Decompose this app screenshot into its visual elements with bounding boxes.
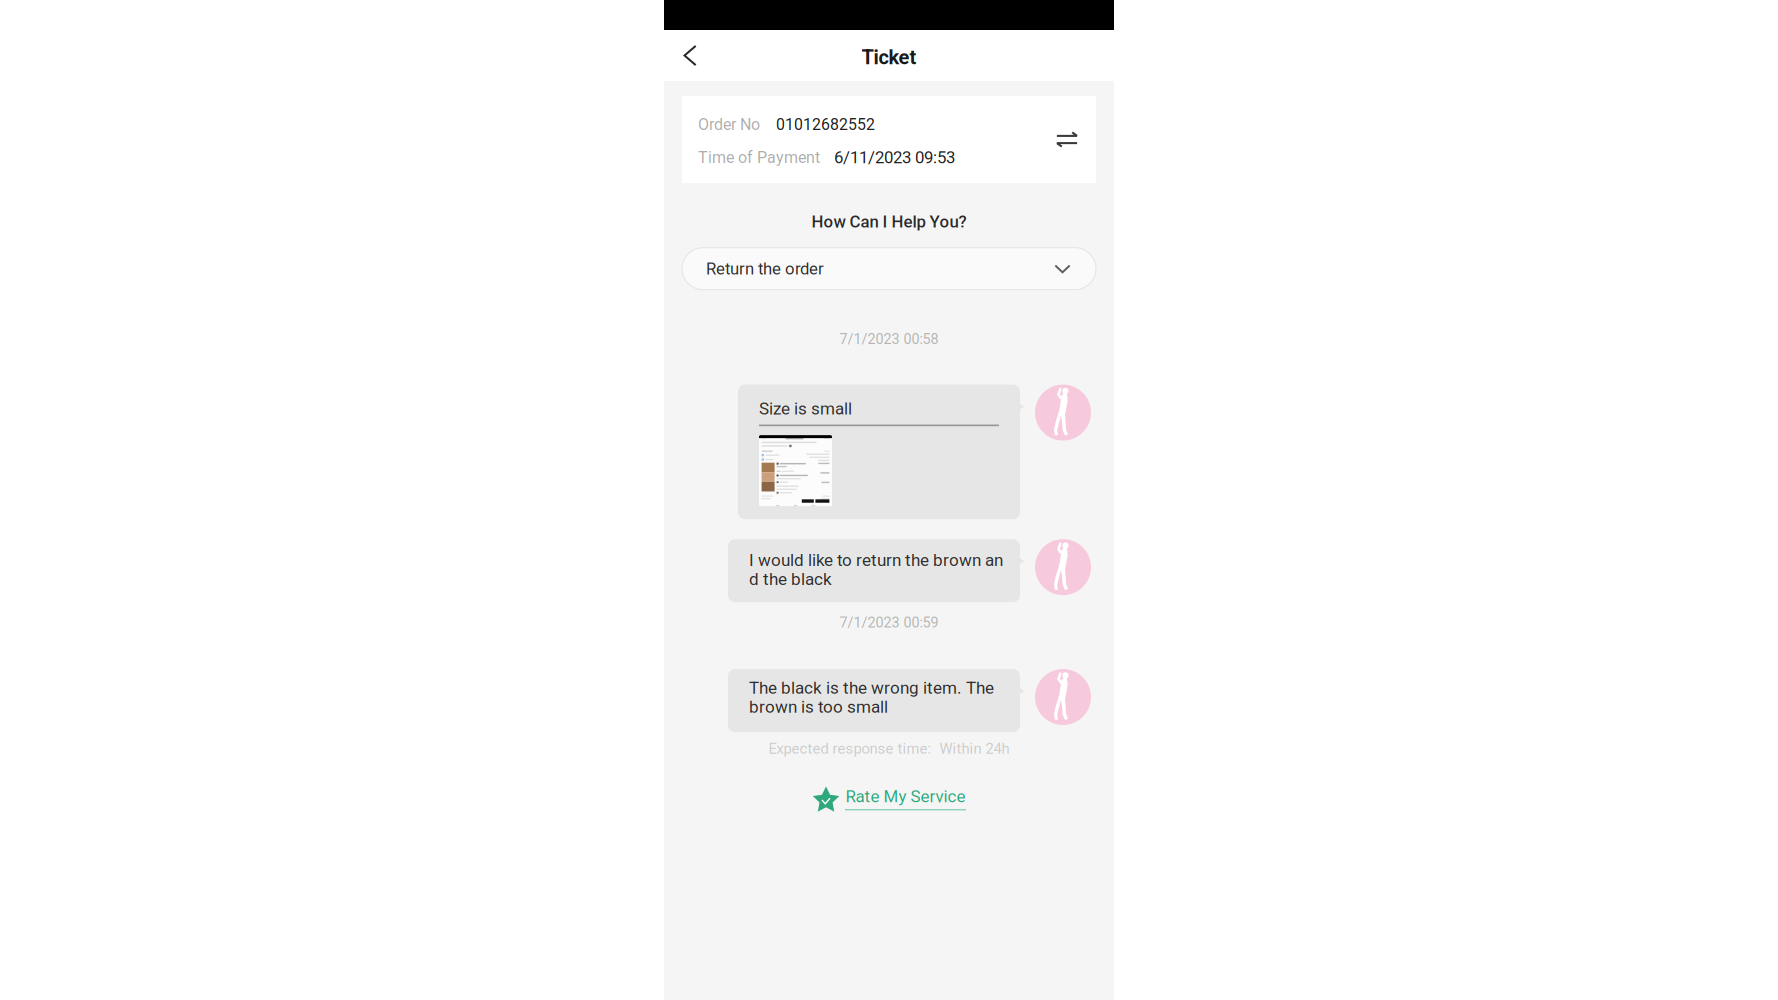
staticText: Order No: [698, 115, 760, 134]
staticText: 6/11/2023 09:53: [834, 148, 955, 167]
staticText: Ticket: [861, 46, 916, 69]
staticText: Size is small: [759, 399, 852, 419]
staticText: Return the order: [706, 259, 824, 278]
staticText: The black is the wrong item. The: [749, 678, 994, 698]
button[interactable]: Back: [667, 32, 713, 78]
button[interactable]: Switch order: [1050, 122, 1084, 156]
staticText: 7/1/2023 00:58: [839, 331, 938, 348]
staticText: How Can I Help You?: [811, 212, 966, 232]
staticText: d the black: [749, 569, 832, 589]
staticText: Time of Payment: [698, 148, 820, 167]
staticText: Rate My Service: [845, 786, 965, 806]
staticText: Expected response time: Within 24h: [768, 740, 1009, 757]
staticText: brown is too small: [749, 697, 888, 717]
button[interactable]: Return the order: [682, 248, 1096, 290]
staticText: 7/1/2023 00:59: [839, 614, 938, 631]
button[interactable]: Rate My Service: [812, 784, 966, 812]
staticText: I would like to return the brown an: [749, 550, 1003, 570]
staticText: 01012682552: [776, 115, 875, 134]
